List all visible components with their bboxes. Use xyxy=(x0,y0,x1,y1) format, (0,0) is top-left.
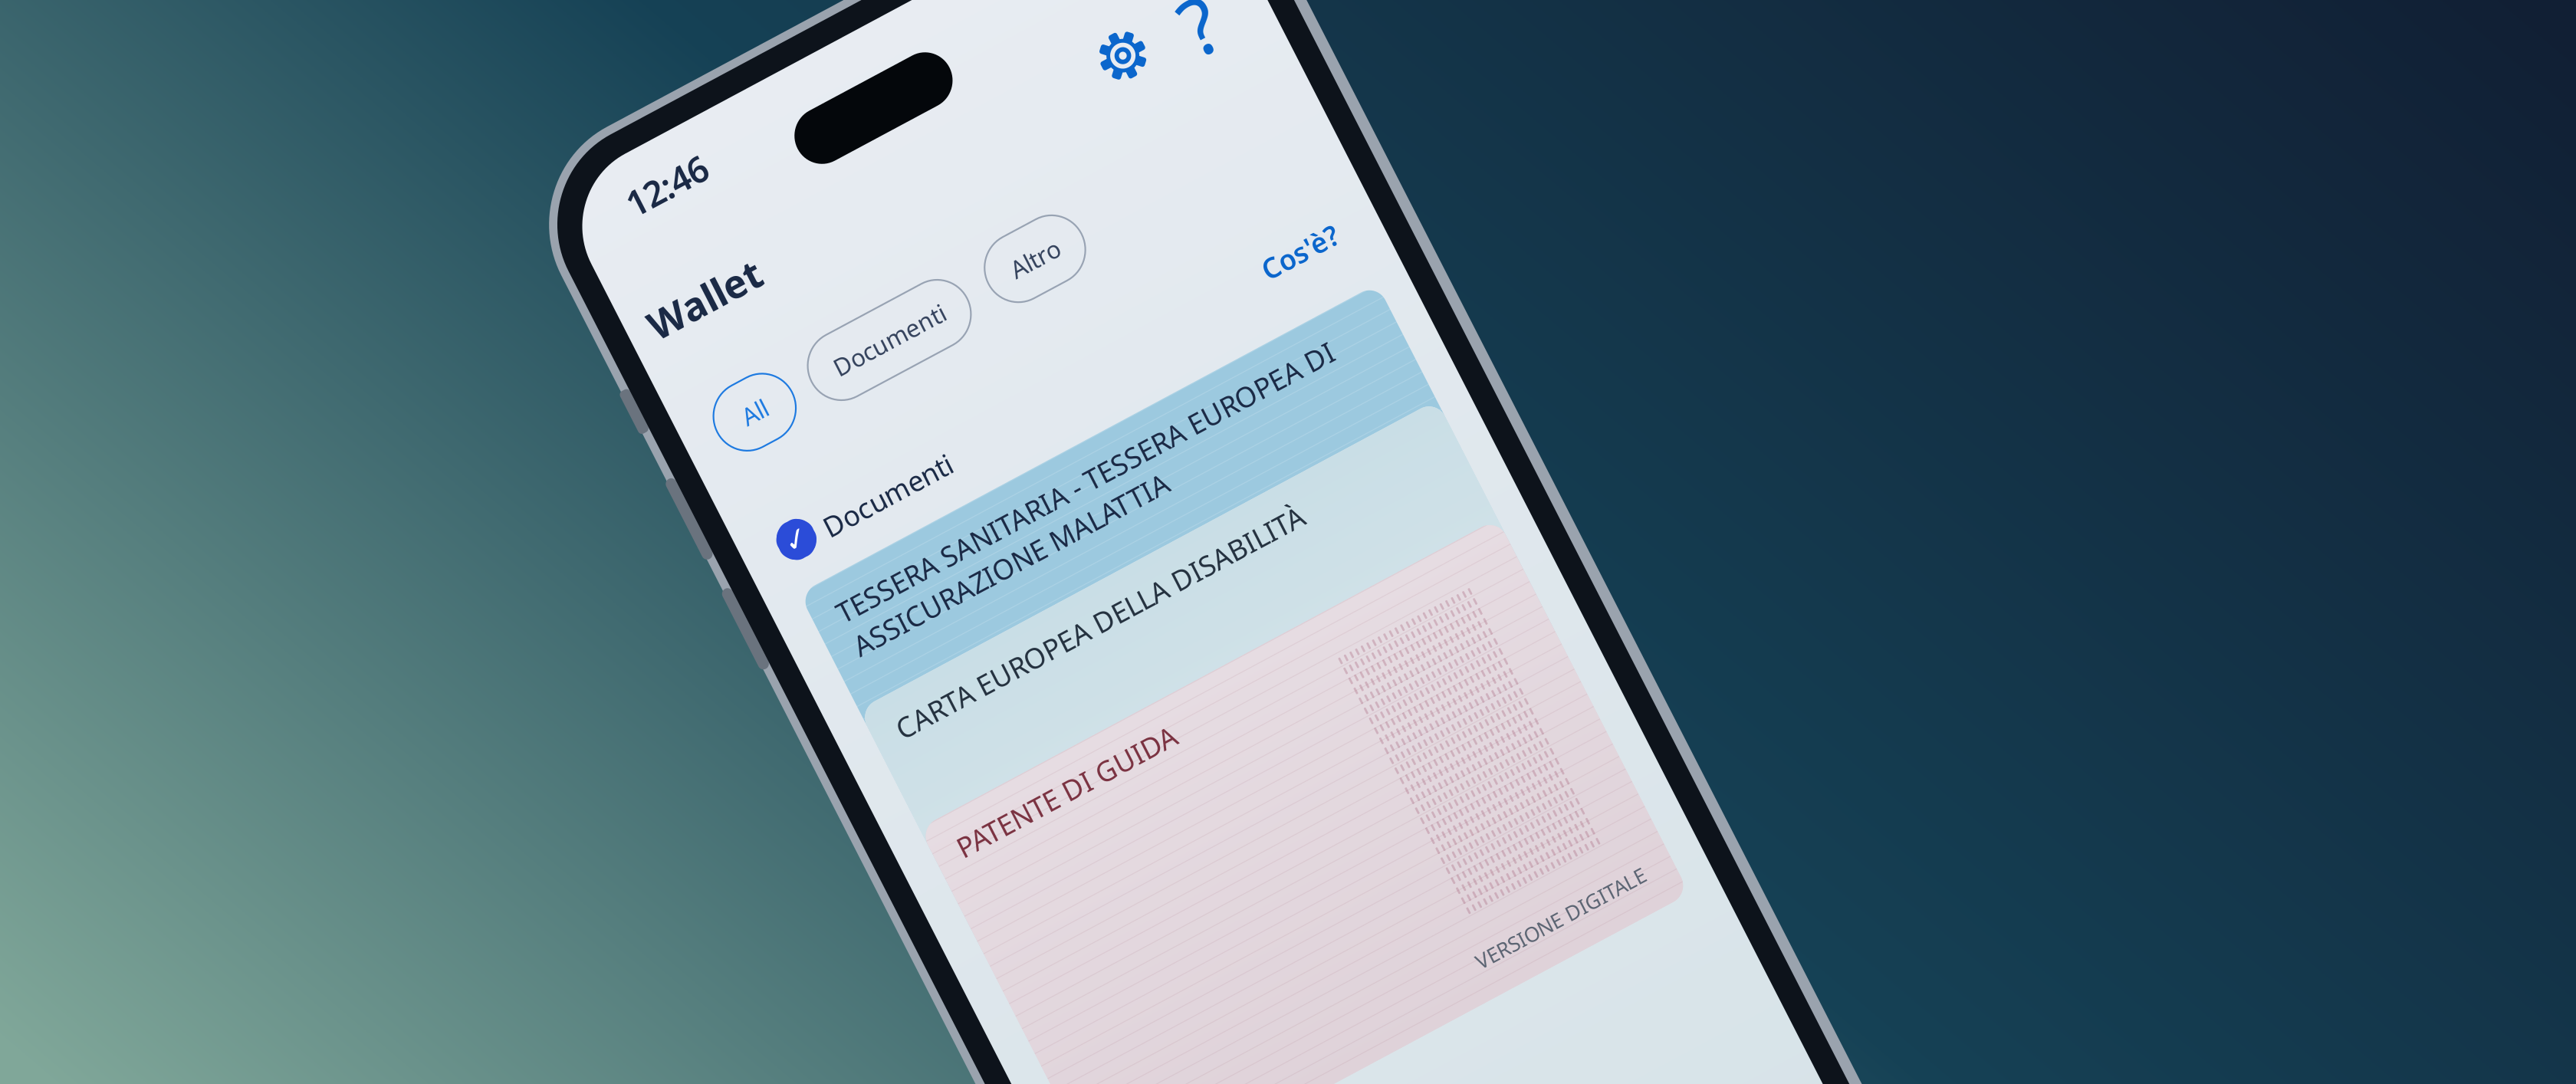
staticText: ? xyxy=(885,252,904,309)
staticText: Documenti xyxy=(629,344,697,361)
staticText: VERSIONE DIGITALE xyxy=(795,797,900,812)
staticText: TESSERA SANITARIA - TESSERA EUROPEA DI A… xyxy=(569,461,878,502)
button[interactable]: All xyxy=(555,334,602,371)
button[interactable]: PATENTE DI GUIDA xyxy=(555,596,917,826)
staticText: 12:46 xyxy=(568,208,617,234)
staticText: Wallet xyxy=(548,271,617,299)
staticText: Documenti xyxy=(584,417,663,437)
button[interactable]: Documenti xyxy=(614,334,712,371)
button[interactable]: Assistenza xyxy=(881,267,908,294)
staticText: CARTA EUROPEA DELLA DISABILITÀ xyxy=(569,533,822,553)
button[interactable]: TESSERA SANITARIA - TESSERA EUROPEA DI A… xyxy=(555,451,917,681)
button[interactable]: CARTA EUROPEA DELLA DISABILITÀ xyxy=(555,523,917,753)
